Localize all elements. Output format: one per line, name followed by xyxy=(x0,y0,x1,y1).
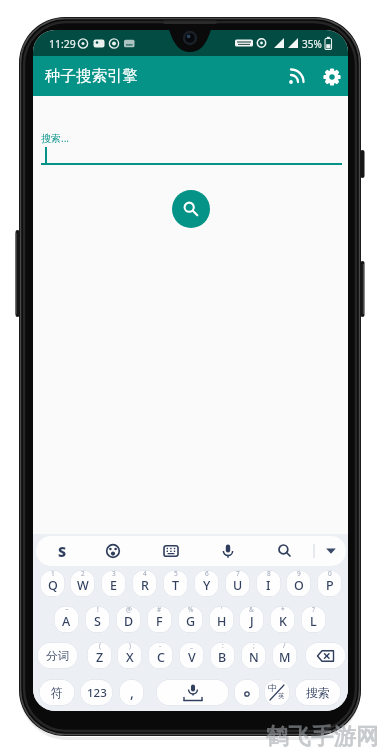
staticText: V xyxy=(188,649,196,666)
staticText: - xyxy=(159,642,162,650)
button[interactable]: 0 xyxy=(317,570,342,597)
staticText: 搜索... xyxy=(41,131,70,145)
button[interactable]: 1 xyxy=(40,570,65,597)
button[interactable] xyxy=(234,679,260,706)
staticText: ' xyxy=(221,606,223,614)
staticText: _ xyxy=(190,642,193,650)
button[interactable]: , xyxy=(119,679,144,706)
staticText: L xyxy=(310,613,317,630)
staticText: W xyxy=(77,577,89,594)
button[interactable] xyxy=(155,538,181,564)
button[interactable] xyxy=(97,538,123,564)
staticText: U xyxy=(233,577,243,594)
staticText: 3 xyxy=(112,570,116,578)
staticText: B xyxy=(218,649,227,666)
button[interactable]: : xyxy=(210,642,235,669)
button[interactable]: ! xyxy=(85,606,110,633)
button[interactable]: 9 xyxy=(286,570,311,597)
button[interactable]: - xyxy=(148,642,173,669)
staticText: & xyxy=(249,606,254,614)
staticText: @ xyxy=(126,606,132,614)
staticText: C xyxy=(157,649,165,666)
staticText: A xyxy=(62,613,71,630)
staticText: J xyxy=(250,613,254,630)
button[interactable] xyxy=(212,538,238,564)
button[interactable]: ? xyxy=(301,606,326,633)
button[interactable]: # xyxy=(147,606,172,633)
staticText: ; xyxy=(253,642,255,650)
staticText: % xyxy=(188,606,194,614)
staticText: 4 xyxy=(143,570,147,578)
button[interactable]: S xyxy=(49,538,75,564)
button[interactable] xyxy=(319,64,344,89)
staticText: T xyxy=(172,577,180,594)
staticText: 鹤飞手游网 xyxy=(266,722,379,750)
staticText: E xyxy=(110,577,117,594)
staticText: ( xyxy=(99,642,101,650)
button[interactable] xyxy=(156,679,229,706)
staticText: G xyxy=(186,613,196,630)
staticText: 种子搜索引擎 xyxy=(45,66,138,86)
staticText: N xyxy=(249,649,259,666)
staticText: Q xyxy=(48,577,58,594)
button[interactable]: / xyxy=(272,642,297,669)
button[interactable]: _ xyxy=(179,642,204,669)
button[interactable]: 5 xyxy=(163,570,188,597)
button[interactable] xyxy=(305,642,346,669)
staticText: 1 xyxy=(51,570,55,578)
staticText: X xyxy=(126,649,134,666)
button[interactable]: 3 xyxy=(101,570,126,597)
staticText: 7 xyxy=(236,570,240,578)
button[interactable]: 6 xyxy=(194,570,219,597)
staticText: / xyxy=(283,642,286,650)
button[interactable] xyxy=(269,538,295,564)
button[interactable]: ' xyxy=(209,606,234,633)
staticText: K xyxy=(279,613,287,630)
staticText: 11:29 xyxy=(49,37,76,51)
staticText: S xyxy=(58,542,67,561)
button[interactable]: ( xyxy=(87,642,112,669)
staticText: S xyxy=(94,613,101,630)
staticText: Z xyxy=(96,649,104,666)
button[interactable]: & xyxy=(239,606,264,633)
button[interactable]: @ xyxy=(116,606,141,633)
staticText: * xyxy=(281,606,285,614)
staticText: M xyxy=(279,649,291,666)
staticText: 123 xyxy=(87,685,107,701)
button[interactable]: 2 xyxy=(70,570,95,597)
staticText: 符 xyxy=(51,685,63,700)
button[interactable] xyxy=(172,190,210,228)
button[interactable]: ; xyxy=(241,642,266,669)
staticText: 8 xyxy=(267,570,271,578)
staticText: # xyxy=(157,606,162,614)
button[interactable]: * xyxy=(270,606,295,633)
button[interactable]: % xyxy=(178,606,203,633)
staticText: F xyxy=(156,613,163,630)
button[interactable]: ~ xyxy=(54,606,79,633)
button[interactable] xyxy=(317,538,343,564)
button[interactable]: 中 xyxy=(264,679,290,706)
staticText: ~ xyxy=(65,606,69,614)
button[interactable]: 4 xyxy=(132,570,157,597)
button[interactable]: 搜索 xyxy=(295,679,341,706)
staticText: H xyxy=(217,613,227,630)
staticText: D xyxy=(124,613,134,630)
staticText: 中 xyxy=(268,682,277,693)
button[interactable]: 123 xyxy=(80,679,113,706)
button[interactable]: 7 xyxy=(225,570,250,597)
button[interactable] xyxy=(284,64,309,89)
staticText: Y xyxy=(203,577,211,594)
staticText: 6 xyxy=(205,570,209,578)
staticText: 0 xyxy=(328,570,332,578)
staticText: ! xyxy=(97,606,99,614)
button[interactable]: 分词 xyxy=(37,642,78,669)
button[interactable]: ) xyxy=(117,642,142,669)
button[interactable]: 符 xyxy=(39,679,75,706)
staticText: 搜索 xyxy=(306,685,330,700)
button[interactable]: 8 xyxy=(256,570,281,597)
staticText: P xyxy=(326,577,334,594)
staticText: 5 xyxy=(174,570,178,578)
staticText: 9 xyxy=(297,570,301,578)
staticText: : xyxy=(222,642,224,650)
